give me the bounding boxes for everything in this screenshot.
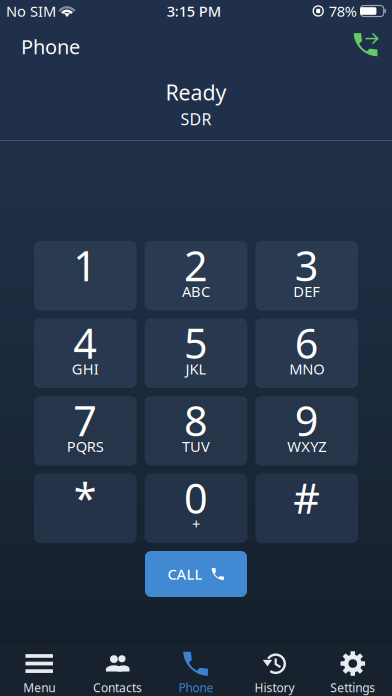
- button[interactable]: New outgoing call: [348, 26, 384, 62]
- staticText: 0: [184, 470, 208, 525]
- staticText: Contacts: [93, 679, 142, 695]
- staticText: 2: [184, 238, 208, 293]
- staticText: JKL: [185, 359, 206, 378]
- button[interactable]: 7: [34, 396, 137, 465]
- button[interactable]: Contacts: [78, 644, 157, 696]
- staticText: Phone: [21, 33, 80, 60]
- button[interactable]: *: [34, 473, 137, 543]
- button[interactable]: 8: [145, 396, 247, 465]
- staticText: #: [293, 470, 320, 525]
- staticText: +: [192, 514, 200, 533]
- button[interactable]: Menu: [0, 644, 78, 696]
- staticText: 8: [184, 393, 208, 448]
- button[interactable]: History: [235, 644, 314, 696]
- staticText: DEF: [293, 281, 320, 301]
- button[interactable]: Phone: [157, 644, 235, 696]
- button[interactable]: 3: [255, 241, 358, 310]
- staticText: Ready: [165, 78, 226, 106]
- staticText: TUV: [182, 436, 210, 456]
- staticText: CALL: [167, 564, 202, 584]
- staticText: WXYZ: [287, 436, 326, 456]
- button[interactable]: Settings: [314, 644, 392, 696]
- staticText: 7: [73, 393, 97, 448]
- button[interactable]: 0: [145, 473, 247, 543]
- staticText: 3: [295, 238, 319, 293]
- staticText: 3:15 PM: [167, 1, 221, 21]
- button[interactable]: #: [255, 473, 358, 543]
- button[interactable]: 1: [34, 241, 137, 310]
- button[interactable]: 6: [255, 318, 358, 388]
- staticText: No SIM: [6, 1, 56, 21]
- staticText: SDR: [180, 108, 211, 129]
- staticText: 5: [184, 315, 208, 370]
- staticText: Phone: [178, 679, 213, 695]
- button[interactable]: 4: [34, 318, 137, 388]
- staticText: 6: [295, 315, 319, 370]
- button[interactable]: CALL: [145, 551, 247, 597]
- button[interactable]: 2: [145, 241, 247, 310]
- staticText: 78%: [329, 1, 357, 21]
- staticText: GHI: [72, 359, 99, 378]
- staticText: Settings: [330, 679, 375, 695]
- staticText: PQRS: [67, 436, 104, 456]
- staticText: 1: [73, 238, 97, 293]
- staticText: ABC: [182, 281, 210, 301]
- staticText: Menu: [23, 679, 55, 695]
- staticText: History: [254, 679, 294, 695]
- button[interactable]: 9: [255, 396, 358, 465]
- staticText: 9: [295, 393, 319, 448]
- staticText: *: [74, 470, 97, 525]
- button[interactable]: 5: [145, 318, 247, 388]
- staticText: 4: [73, 315, 97, 370]
- staticText: MNO: [289, 359, 324, 378]
